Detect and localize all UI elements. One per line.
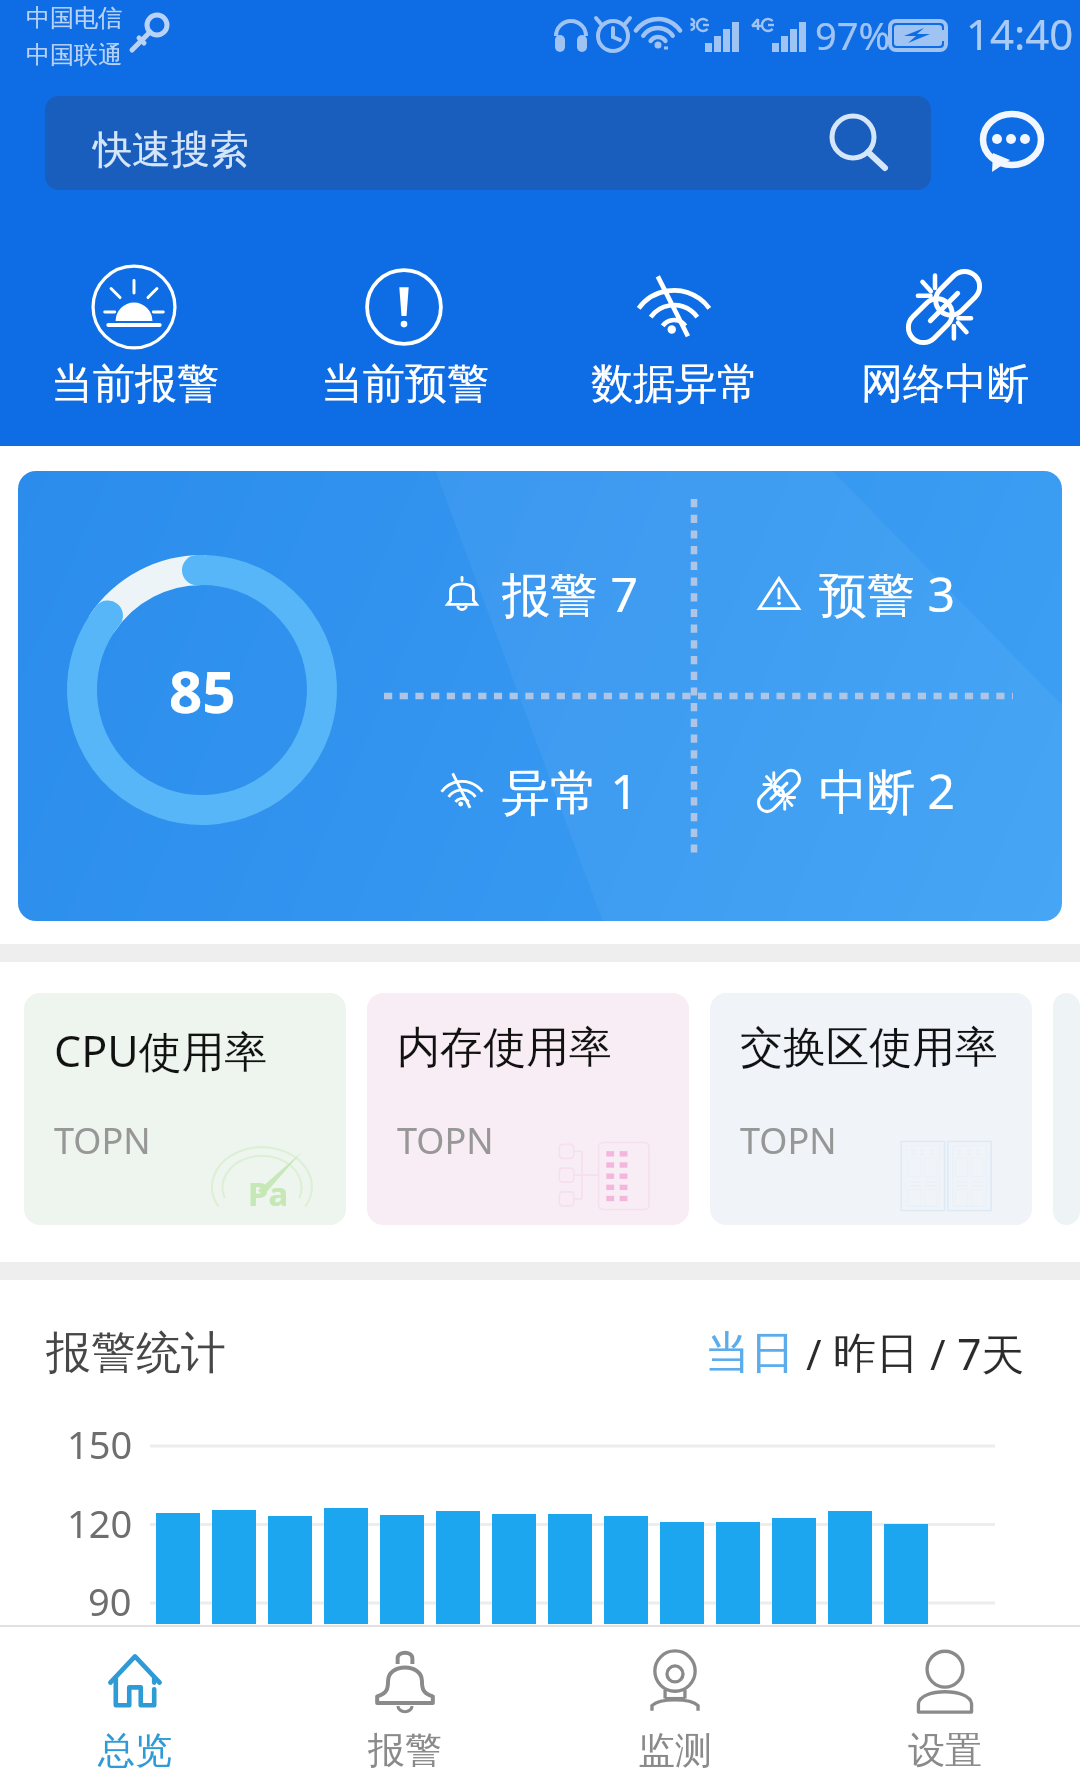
button[interactable]: 异常 1 (382, 758, 692, 824)
staticText: / (919, 1325, 957, 1382)
staticText: 交换区使用率 (740, 1021, 998, 1075)
button[interactable]: 内存使用率 (367, 993, 689, 1225)
staticText: 90 (88, 1575, 132, 1627)
button[interactable]: 设置 (810, 1627, 1080, 1788)
staticText: 14:40 (966, 5, 1074, 62)
button[interactable]: 交换区使用率 (710, 993, 1032, 1225)
staticText: 7天 (957, 1324, 1025, 1383)
button[interactable]: 数据异常 (540, 262, 810, 412)
staticText: CPU使用率 (54, 1021, 268, 1080)
button[interactable]: 预警 3 (670, 561, 1038, 627)
button[interactable]: 网络中断 (810, 262, 1080, 412)
staticText: 当日 (705, 1325, 795, 1382)
button[interactable]: 85 (18, 471, 1062, 921)
staticText: 预警 3 (819, 561, 955, 627)
staticText: 报警 (368, 1727, 442, 1774)
staticText: / (795, 1325, 833, 1382)
button[interactable]: 总览 (0, 1627, 270, 1788)
staticText: 总览 (98, 1727, 172, 1774)
staticText: 网络中断 (861, 358, 1029, 411)
staticText: 快速搜索 (93, 125, 249, 174)
staticText: 当前报警 (51, 358, 219, 411)
staticText: 当前预警 (321, 358, 489, 411)
staticText: 异常 1 (502, 758, 638, 824)
staticText: Pa (248, 1171, 289, 1216)
staticText: 85 (169, 651, 236, 730)
staticText: 监测 (638, 1727, 712, 1774)
staticText: 报警 7 (502, 561, 638, 627)
button[interactable]: 报警 (270, 1627, 540, 1788)
button[interactable]: CPU使用率 (24, 993, 346, 1225)
staticText: 中国电信 (26, 3, 122, 33)
staticText: 120 (67, 1497, 133, 1549)
button[interactable]: 报警 7 (382, 561, 692, 627)
button[interactable]: 监测 (540, 1627, 810, 1788)
button[interactable]: 中断 2 (670, 758, 1038, 824)
button[interactable]: 快速搜索 (45, 96, 931, 190)
staticText: 97% (815, 9, 891, 61)
button[interactable]: 当前报警 (0, 262, 270, 412)
staticText: TOPN (397, 1116, 494, 1165)
button[interactable]: 当日 (705, 1325, 795, 1382)
staticText: TOPN (54, 1116, 151, 1165)
staticText: 设置 (908, 1727, 982, 1774)
staticText: 报警统计 (46, 1325, 226, 1382)
staticText: 内存使用率 (397, 1021, 612, 1075)
staticText: 数据异常 (591, 358, 759, 411)
button[interactable]: 当前预警 (270, 262, 540, 412)
staticText: 昨日 (833, 1327, 919, 1381)
staticText: 150 (67, 1418, 133, 1470)
staticText: 中断 2 (819, 758, 955, 824)
button[interactable]: 昨日 (833, 1327, 919, 1381)
staticText: 中国联通 (26, 40, 122, 70)
staticText: TOPN (740, 1116, 837, 1165)
button[interactable]: Messages (982, 112, 1044, 174)
button[interactable]: 7天 (957, 1324, 1025, 1383)
